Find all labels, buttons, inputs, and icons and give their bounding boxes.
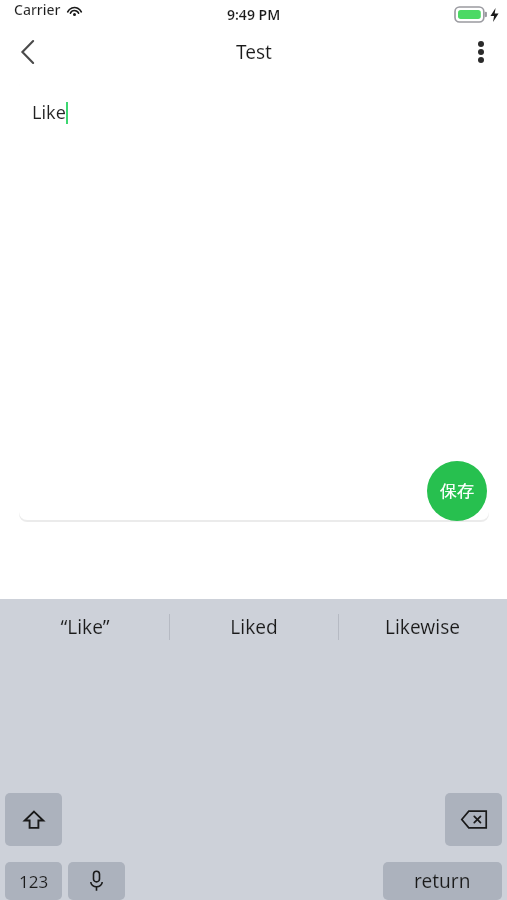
button[interactable]: Dictate (68, 862, 125, 900)
staticText: 123 (19, 870, 49, 893)
button[interactable]: More options (455, 28, 507, 75)
button[interactable]: return (383, 862, 502, 900)
button[interactable]: Backspace (445, 793, 502, 846)
staticText: 9:49 PM (227, 5, 281, 24)
staticText: return (414, 868, 471, 894)
staticText: 保存 (440, 481, 474, 502)
button[interactable]: Like (19, 78, 489, 520)
staticText: Test (236, 39, 272, 65)
staticText: Likewise (385, 614, 460, 640)
staticText: “Like” (60, 614, 110, 640)
button[interactable]: “Like” (0, 599, 169, 655)
button[interactable]: 123 (5, 862, 62, 900)
button[interactable]: 保存 (427, 461, 487, 521)
button[interactable]: Shift (5, 793, 62, 846)
staticText: Like (32, 100, 66, 125)
staticText: Liked (230, 614, 278, 640)
staticText: Carrier (14, 0, 61, 19)
button[interactable]: Back (0, 28, 56, 75)
button[interactable]: Liked (169, 599, 338, 655)
button[interactable]: Likewise (338, 599, 507, 655)
